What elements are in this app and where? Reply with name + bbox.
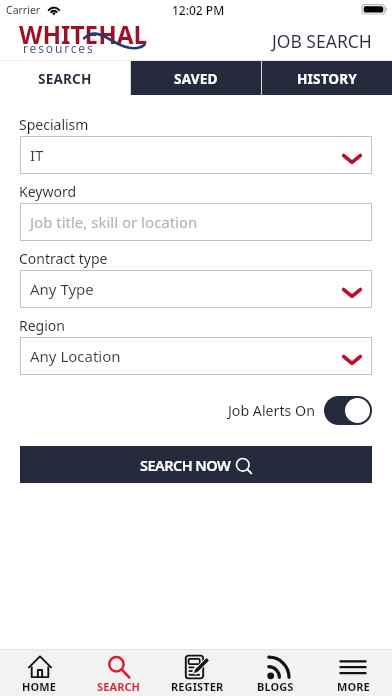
staticText: HISTORY (297, 69, 357, 88)
staticText: Any Location (30, 346, 121, 366)
button[interactable]: SEARCH (79, 650, 158, 696)
staticText: Specialism (19, 115, 89, 134)
staticText: resources (23, 40, 95, 56)
staticText: Region (19, 316, 65, 335)
button[interactable]: MORE (314, 650, 392, 696)
button[interactable]: HOME (0, 650, 79, 696)
staticText: Any Type (30, 279, 94, 299)
staticText: HOME (22, 679, 57, 694)
staticText: Job Alerts On (228, 401, 315, 420)
staticText: 12:02 PM (172, 2, 225, 18)
button[interactable]: IT (20, 136, 372, 174)
staticText: JOB SEARCH (272, 29, 372, 53)
button[interactable]: BLOGS (236, 650, 314, 696)
staticText: MORE (337, 679, 370, 694)
staticText: Keyword (19, 182, 77, 201)
button[interactable]: SEARCH NOW (20, 446, 372, 483)
button[interactable]: Any Location (20, 337, 372, 375)
staticText: Job title, skill or location (30, 212, 198, 232)
staticText: BLOGS (257, 679, 294, 694)
button[interactable]: REGISTER (158, 650, 236, 696)
staticText: IT (30, 145, 44, 165)
button[interactable]: SEARCH (0, 61, 130, 95)
button[interactable]: Job title, skill or location (20, 203, 372, 241)
staticText: SEARCH NOW (140, 455, 231, 475)
staticText: Contract type (19, 249, 108, 268)
staticText: WHITEHALL (19, 18, 149, 54)
staticText: SEARCH (97, 679, 141, 694)
button[interactable]: HISTORY (262, 61, 392, 95)
button[interactable]: SAVED (131, 61, 261, 95)
button[interactable]: Any Type (20, 270, 372, 308)
staticText: SEARCH (38, 69, 92, 88)
staticText: SAVED (174, 69, 218, 88)
button[interactable]: Job Alerts toggle (324, 396, 372, 425)
staticText: REGISTER (171, 679, 224, 694)
staticText: Carrier (6, 3, 41, 17)
